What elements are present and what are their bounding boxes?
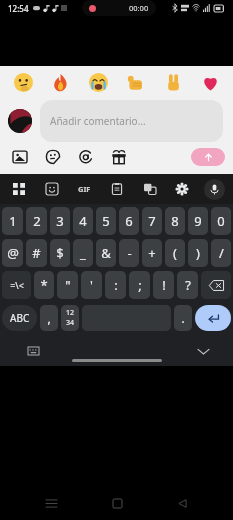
staticText: (	[173, 244, 177, 262]
button[interactable]: Regalo	[109, 147, 129, 167]
button[interactable]: $	[50, 239, 70, 267]
button[interactable]: Emoji	[122, 69, 148, 95]
button[interactable]: ABC	[2, 305, 37, 331]
staticText: $	[56, 244, 64, 262]
button[interactable]: :	[105, 271, 126, 299]
staticText: 8	[171, 212, 179, 230]
button[interactable]: 1	[2, 207, 23, 235]
staticText: /	[219, 244, 224, 262]
button[interactable]: Borrar	[201, 271, 231, 299]
button[interactable]: 5	[96, 207, 116, 235]
staticText: .	[181, 310, 185, 326]
button[interactable]: Recientes	[36, 488, 66, 518]
button[interactable]: 7	[142, 207, 162, 235]
staticText: *	[40, 276, 48, 294]
button[interactable]: Emoji	[85, 69, 111, 95]
button[interactable]: Mención	[76, 147, 96, 167]
staticText: 0	[217, 212, 225, 230]
button[interactable]: Perfil	[8, 109, 32, 133]
button[interactable]: _	[73, 239, 93, 267]
button[interactable]: 0	[211, 207, 231, 235]
button[interactable]: Números	[61, 305, 79, 331]
staticText: &	[101, 244, 111, 262]
staticText: 12:54	[8, 3, 29, 14]
button[interactable]: +	[142, 239, 162, 267]
button[interactable]: 3	[50, 207, 70, 235]
button[interactable]: .	[174, 305, 192, 331]
staticText: 2	[33, 212, 41, 230]
button[interactable]: Sticker	[43, 147, 63, 167]
button[interactable]: Añadir comentario...	[40, 100, 223, 142]
button[interactable]: '	[81, 271, 102, 299]
button[interactable]: Enviar	[191, 148, 225, 166]
staticText: ;	[138, 276, 142, 294]
button[interactable]: GIF	[73, 178, 95, 200]
button[interactable]: @	[2, 239, 23, 267]
button[interactable]: Emoji	[47, 69, 73, 95]
button[interactable]: Cerrar teclado	[195, 343, 211, 359]
button[interactable]: Intro	[195, 305, 231, 331]
button[interactable]: -	[119, 239, 139, 267]
staticText: 12	[66, 308, 75, 318]
button[interactable]: Micrófono	[204, 179, 225, 200]
button[interactable]: )	[188, 239, 208, 267]
button[interactable]: (	[165, 239, 185, 267]
button[interactable]: Inicio	[102, 488, 132, 518]
staticText: 9	[194, 212, 202, 230]
staticText: GIF	[78, 184, 91, 194]
button[interactable]: =\<	[2, 271, 31, 299]
staticText: @	[7, 244, 19, 262]
button[interactable]: ,	[40, 305, 58, 331]
staticText: ?	[185, 276, 191, 294]
button[interactable]: Emoji	[160, 69, 186, 95]
staticText: Añadir comentario...	[50, 114, 146, 128]
button[interactable]: !	[153, 271, 174, 299]
button[interactable]: ;	[129, 271, 150, 299]
button[interactable]: &	[96, 239, 116, 267]
button[interactable]: 2	[26, 207, 47, 235]
staticText: _	[80, 244, 86, 262]
staticText: 00:00	[129, 3, 149, 13]
button[interactable]: /	[211, 239, 231, 267]
staticText: =\<	[10, 279, 24, 291]
button[interactable]: Apps	[8, 178, 30, 200]
staticText: ,	[47, 310, 51, 326]
staticText: :	[114, 276, 118, 294]
button[interactable]: 9	[188, 207, 208, 235]
staticText: 1	[9, 212, 17, 230]
button[interactable]: "	[57, 271, 78, 299]
staticText: 4	[79, 212, 87, 230]
button[interactable]: ?	[177, 271, 198, 299]
staticText: "	[65, 276, 71, 294]
staticText: 34	[66, 318, 75, 328]
button[interactable]: 4	[73, 207, 93, 235]
staticText: )	[196, 244, 200, 262]
button[interactable]: Imagen	[10, 147, 30, 167]
staticText: #	[32, 244, 41, 262]
button[interactable]: #	[26, 239, 47, 267]
button[interactable]: Ajustes	[171, 178, 193, 200]
staticText: 3	[56, 212, 64, 230]
staticText: +	[148, 244, 156, 262]
button[interactable]: 6	[119, 207, 139, 235]
button[interactable]: Atrás	[167, 488, 197, 518]
staticText: 7	[148, 212, 156, 230]
staticText: 5	[102, 212, 110, 230]
staticText: '	[90, 276, 93, 294]
staticText: -	[127, 244, 132, 262]
button[interactable]: Traducir	[139, 178, 161, 200]
staticText: !	[162, 276, 166, 294]
button[interactable]: Portapapeles	[106, 178, 128, 200]
button[interactable]: *	[34, 271, 54, 299]
button[interactable]: Emoji	[41, 178, 63, 200]
staticText: 6	[125, 212, 133, 230]
button[interactable]: 8	[165, 207, 185, 235]
button[interactable]: Emoji	[197, 69, 223, 95]
button[interactable]: Teclado	[26, 344, 40, 358]
button[interactable]: Emoji	[10, 69, 36, 95]
staticText: ABC	[10, 311, 30, 325]
